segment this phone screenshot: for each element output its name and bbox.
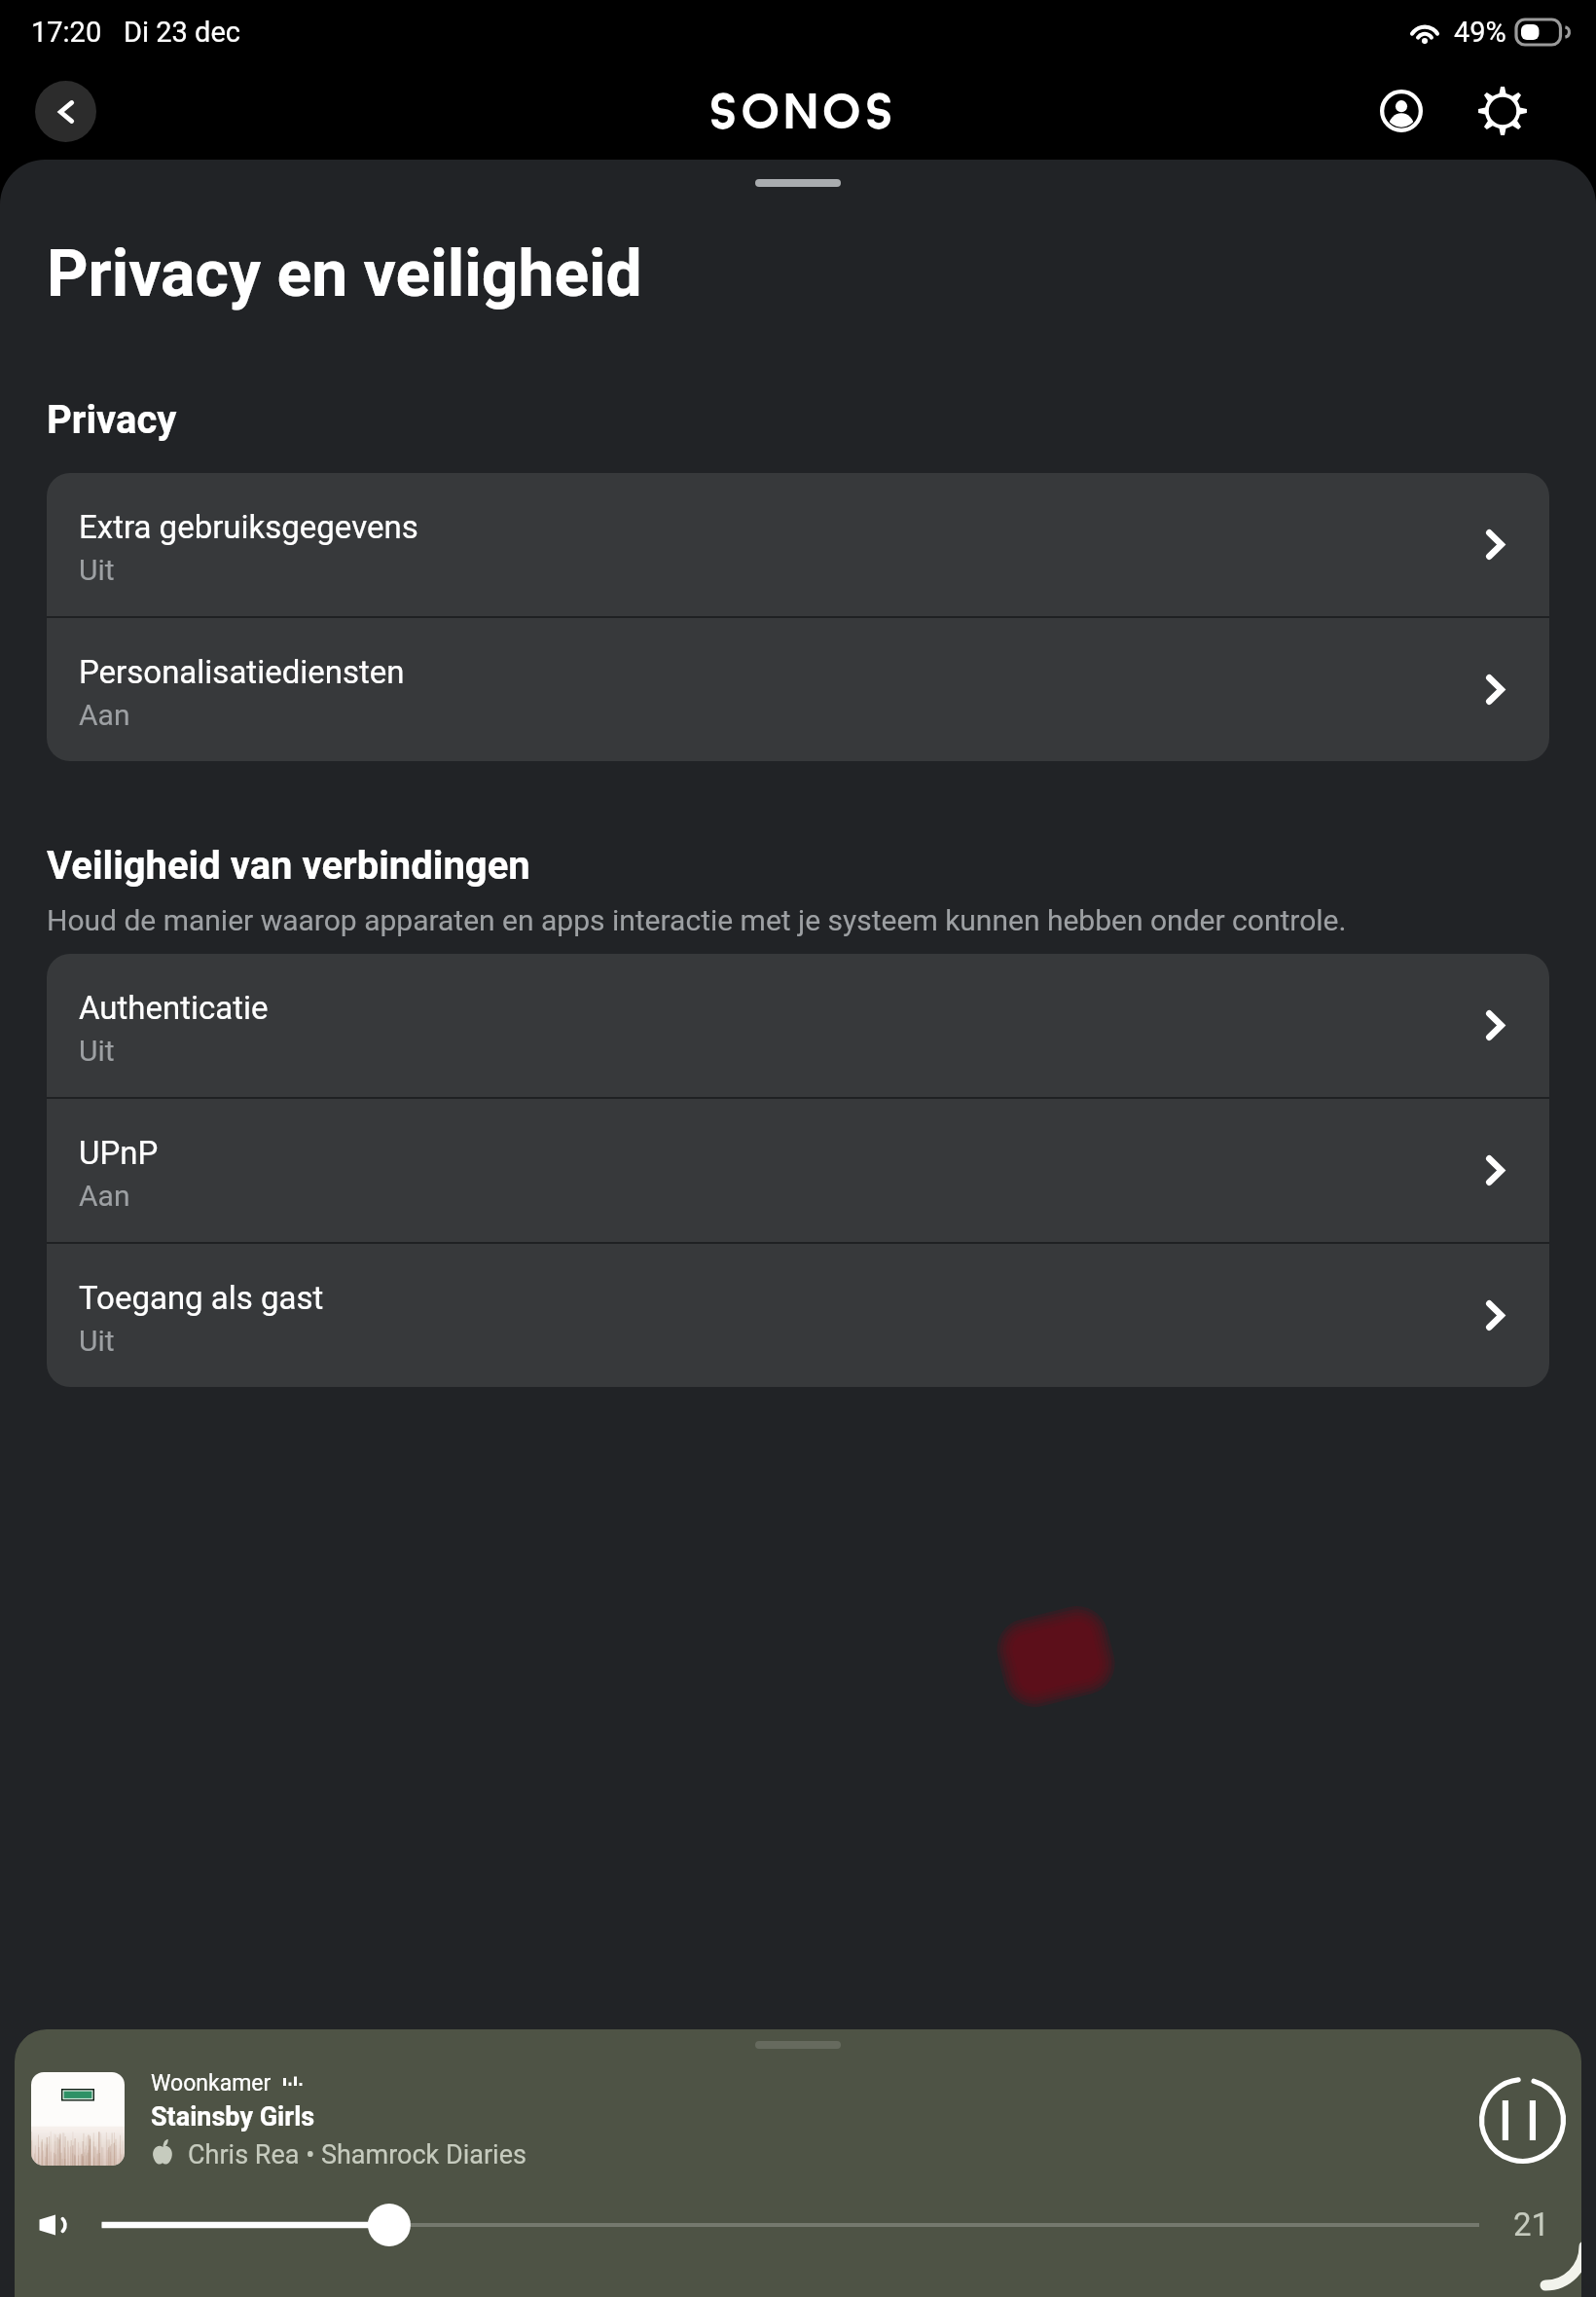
staticText: Stainsby Girls [151,2101,315,2133]
staticText: UPnP [79,1134,159,1172]
staticText: Aan [79,1179,130,1213]
staticText: Authenticatie [79,989,269,1027]
staticText: Personalisatiediensten [79,653,405,691]
staticText: 21 [1513,2206,1550,2243]
staticText: 17:20 [31,16,102,49]
staticText: Woonkamer [151,2070,272,2096]
button[interactable]: Settings [1473,82,1532,140]
staticText: Chris Rea • Shamrock Diaries [188,2139,526,2170]
button[interactable]: Back [35,81,96,142]
button[interactable]: Pause [1479,2077,1566,2164]
staticText: Uit [79,1034,115,1068]
button[interactable]: Toegang als gast [47,1244,1549,1387]
button[interactable]: Expand now playing [755,2041,841,2049]
button[interactable]: Volume 21 [34,2201,1489,2249]
staticText: Di 23 dec [124,16,240,49]
staticText: Aan [79,698,130,732]
button[interactable]: Now playing: Stainsby Girls [31,2068,1394,2175]
staticText: 49% [1454,16,1506,49]
button[interactable]: Drag handle [755,179,841,187]
staticText: Uit [79,1324,115,1358]
button[interactable]: Authenticatie [47,954,1549,1097]
staticText: Toegang als gast [79,1279,324,1317]
button[interactable]: Extra gebruiksgegevens [47,473,1549,616]
button[interactable]: Account [1372,82,1431,140]
staticText: Veiligheid van verbindingen [47,843,530,889]
staticText: Extra gebruiksgegevens [79,508,418,546]
staticText: Uit [79,553,115,587]
staticText: Houd de manier waarop apparaten en apps … [47,903,1347,937]
staticText: Privacy [47,397,177,443]
button[interactable]: UPnP [47,1099,1549,1242]
button[interactable]: Personalisatiediensten [47,618,1549,761]
staticText: Privacy en veiligheid [47,237,642,311]
